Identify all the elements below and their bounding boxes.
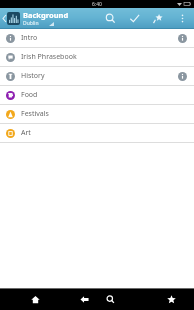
button[interactable]: More info about History (174, 68, 190, 84)
button[interactable]: More info about Intro (174, 30, 190, 46)
button[interactable]: More options (170, 8, 194, 28)
button[interactable]: History (0, 67, 194, 85)
button[interactable]: Home (26, 290, 44, 308)
staticText: Art (21, 128, 31, 138)
staticText: Irish Phrasebook (21, 52, 77, 62)
button[interactable]: Navigate up (0, 8, 23, 28)
button[interactable]: Festivals (0, 105, 194, 123)
button[interactable]: Art (0, 124, 194, 142)
staticText: Dublin (23, 20, 39, 27)
staticText: History (21, 71, 45, 81)
staticText: Food (21, 90, 38, 100)
button[interactable]: Food (0, 86, 194, 104)
button[interactable]: Favorites (162, 290, 180, 308)
staticText: Festivals (21, 109, 49, 119)
button[interactable]: Search (98, 8, 122, 28)
button[interactable]: Back (75, 290, 93, 308)
staticText: Background (23, 10, 69, 20)
button[interactable]: Search (101, 290, 119, 308)
staticText: 6:40 (92, 1, 102, 8)
button[interactable]: Bookmark (146, 8, 170, 28)
button[interactable]: Intro (0, 29, 194, 47)
button[interactable]: Edit (122, 8, 146, 28)
button[interactable]: Background (23, 8, 98, 28)
staticText: Intro (21, 33, 38, 43)
button[interactable]: Irish Phrasebook (0, 48, 194, 66)
